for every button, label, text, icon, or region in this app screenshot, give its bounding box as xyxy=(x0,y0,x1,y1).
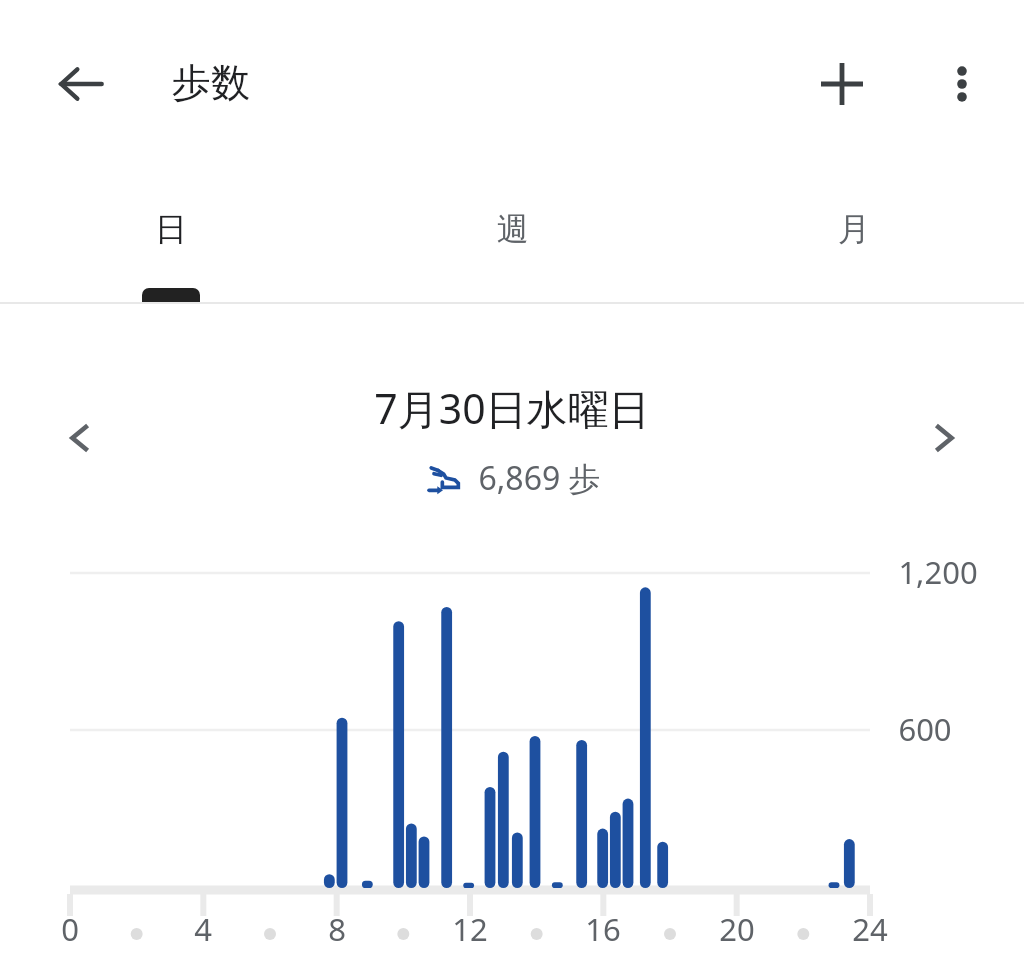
staticText: 0 xyxy=(61,908,79,950)
staticText: 12 xyxy=(452,908,488,950)
staticText: 6,869 歩 xyxy=(478,456,601,500)
button[interactable]: 週 xyxy=(342,168,683,302)
button[interactable]: Add xyxy=(803,45,881,123)
staticText: 600 xyxy=(898,708,952,750)
staticText: 24 xyxy=(852,908,888,950)
staticText: 7月30日水曜日 xyxy=(374,380,650,436)
staticText: 日 xyxy=(155,209,187,249)
button[interactable]: More options xyxy=(923,45,1001,123)
button[interactable]: Next day xyxy=(908,402,980,474)
staticText: 20 xyxy=(719,908,755,950)
staticText: 16 xyxy=(585,908,621,950)
staticText: 4 xyxy=(194,908,212,950)
button[interactable]: Back xyxy=(42,45,120,123)
button[interactable]: Previous day xyxy=(44,402,116,474)
staticText: 月 xyxy=(838,209,870,249)
staticText: 週 xyxy=(497,209,529,249)
button[interactable]: 月 xyxy=(683,168,1024,302)
staticText: 1,200 xyxy=(898,551,978,593)
button[interactable]: 日 xyxy=(0,168,342,302)
staticText: 歩数 xyxy=(172,58,250,107)
staticText: 8 xyxy=(328,908,346,950)
